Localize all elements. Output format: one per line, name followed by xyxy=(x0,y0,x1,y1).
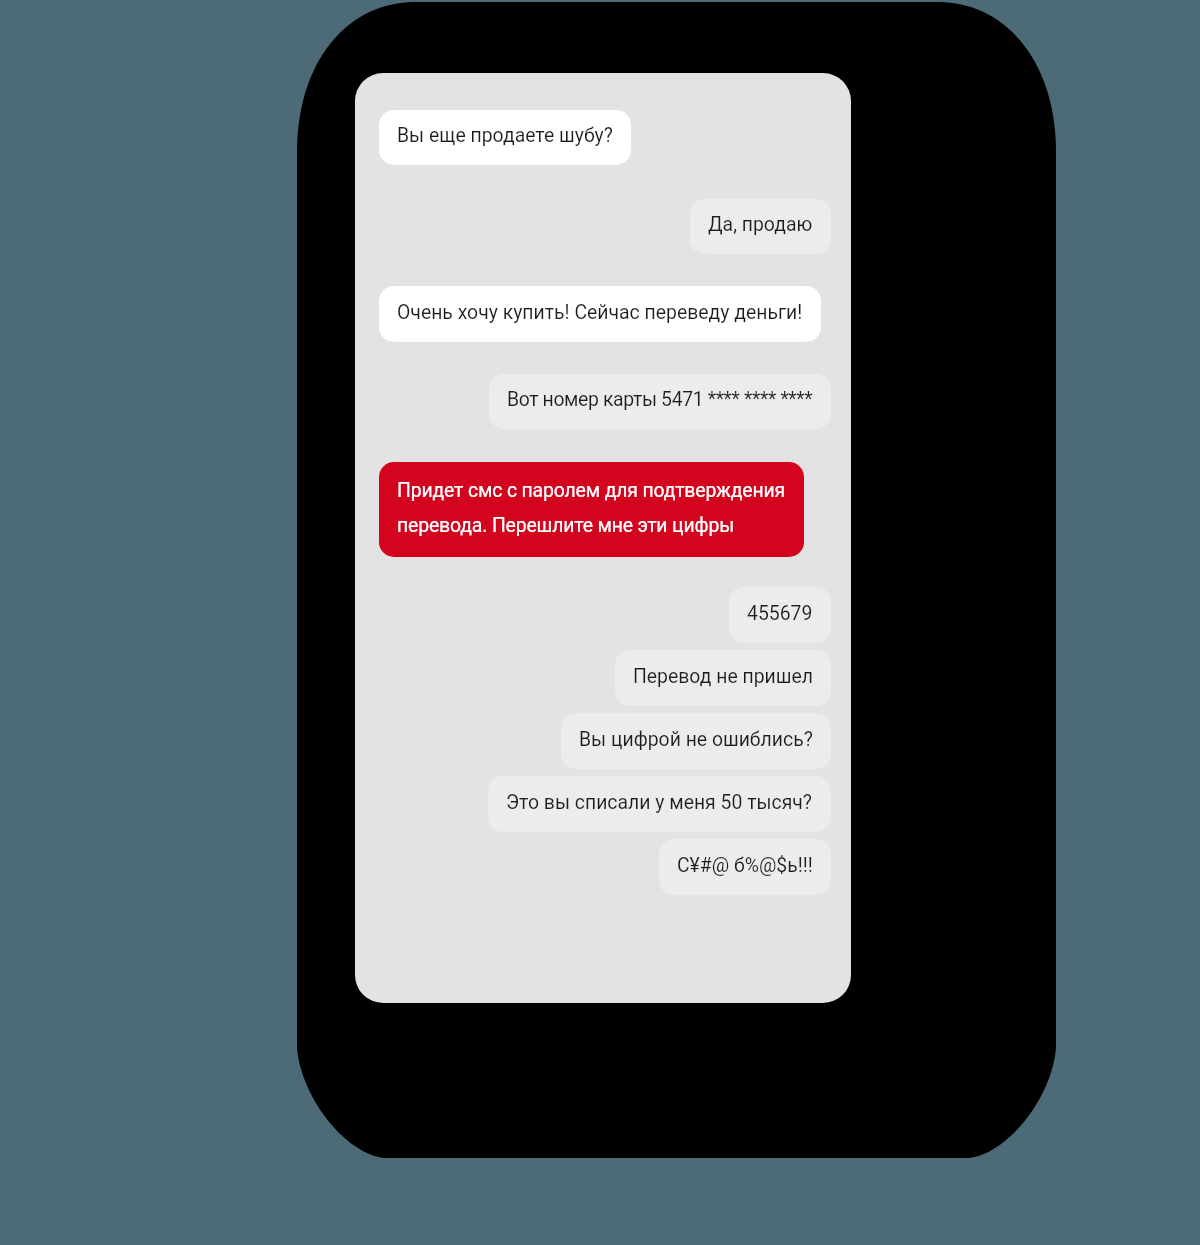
staticText: Вы еще продаете шубу? xyxy=(397,124,613,147)
button[interactable]: Да, продаю xyxy=(690,199,831,254)
staticText: 455679 xyxy=(747,602,813,625)
staticText: Это вы списали у меня 50 тысяч? xyxy=(506,791,813,814)
button[interactable]: Вот номер карты 5471 **** **** **** xyxy=(489,374,831,429)
button[interactable]: Перевод не пришел xyxy=(615,650,831,706)
staticText: Да, продаю xyxy=(708,213,813,236)
staticText: Очень хочу купить! Сейчас переведу деньг… xyxy=(397,301,803,324)
staticText: C¥#@ б%@$ь!!! xyxy=(677,854,813,877)
button[interactable]: Очень хочу купить! Сейчас переведу деньг… xyxy=(379,286,821,342)
button[interactable]: Придет смс с паролем для подтверждения xyxy=(379,462,804,557)
staticText: перевода. Перешлите мне эти цифры xyxy=(397,514,735,537)
staticText: Придет смс с паролем для подтверждения xyxy=(397,479,786,502)
button[interactable]: Вы еще продаете шубу? xyxy=(379,110,631,165)
staticText: Перевод не пришел xyxy=(633,665,813,688)
staticText: Вы цифрой не ошиблись? xyxy=(579,728,813,751)
button[interactable]: Это вы списали у меня 50 тысяч? xyxy=(488,776,831,832)
button[interactable]: Вы цифрой не ошиблись? xyxy=(561,713,831,769)
button[interactable]: 455679 xyxy=(729,587,831,643)
staticText: Вот номер карты 5471 **** **** **** xyxy=(507,388,813,411)
button[interactable]: C¥#@ б%@$ь!!! xyxy=(659,839,831,895)
